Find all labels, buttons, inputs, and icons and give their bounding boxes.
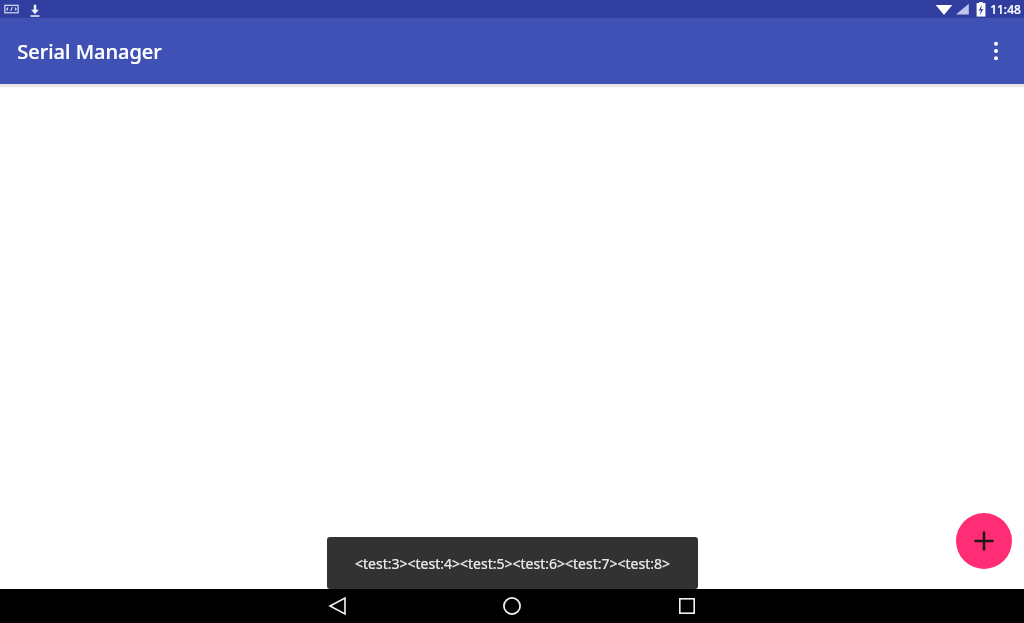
button[interactable]: More options <box>972 27 1020 75</box>
staticText: 11:48 <box>990 1 1021 17</box>
staticText: <test:3><test:4><test:5><test:6><test:7>… <box>355 554 670 573</box>
button[interactable]: Add <box>956 513 1012 569</box>
button[interactable]: Recent apps <box>663 589 711 623</box>
button[interactable]: Back <box>313 589 1024 623</box>
button[interactable]: Home <box>488 589 536 623</box>
staticText: Serial Manager <box>17 38 162 65</box>
